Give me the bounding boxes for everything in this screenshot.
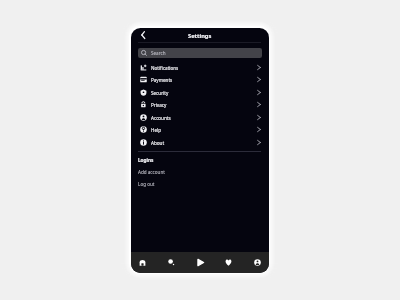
button[interactable]: Play [194,252,207,273]
staticText: About [151,140,165,146]
staticText: Logins [138,157,154,163]
button[interactable]: Home [136,252,149,273]
staticText: Privacy [151,102,167,108]
button[interactable]: Security [131,86,269,99]
staticText: Payments [151,77,173,83]
button[interactable]: Profile [251,252,264,273]
button[interactable]: About [131,136,269,149]
button[interactable]: Back [140,30,146,41]
staticText: Log out [138,181,155,187]
button[interactable]: Payments [131,73,269,86]
staticText: Help [151,127,162,133]
staticText: Search [151,50,166,56]
staticText: Settings [188,32,212,40]
staticText: Accounts [151,115,171,121]
button[interactable]: Log out [131,178,269,190]
button[interactable]: Accounts [131,111,269,124]
staticText: Security [151,90,169,96]
button[interactable]: Search [138,48,262,58]
button[interactable]: Privacy [131,98,269,111]
staticText: Add account [138,169,165,175]
button[interactable]: Notifications [131,61,269,74]
button[interactable]: Favorites [222,252,235,273]
button[interactable]: Search [165,252,178,273]
staticText: Notifications [151,65,179,71]
button[interactable]: Help [131,123,269,136]
button[interactable]: Add account [131,166,269,178]
